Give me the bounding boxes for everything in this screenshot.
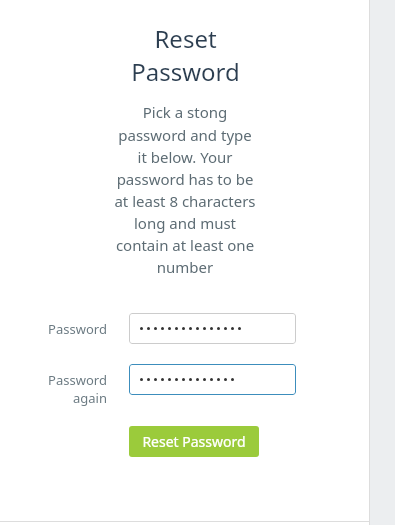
staticText: Reset Password (142, 432, 246, 451)
button[interactable]: Password input field (129, 313, 296, 344)
staticText: again (73, 389, 107, 407)
staticText: Password (48, 371, 107, 389)
staticText: Password (48, 320, 107, 338)
button[interactable]: Password again input field (129, 364, 296, 395)
staticText: Password (131, 55, 240, 88)
staticText: Reset (154, 22, 217, 55)
staticText: Pick a stong password and type it below.… (114, 102, 256, 277)
button[interactable]: Reset Password (129, 426, 259, 457)
